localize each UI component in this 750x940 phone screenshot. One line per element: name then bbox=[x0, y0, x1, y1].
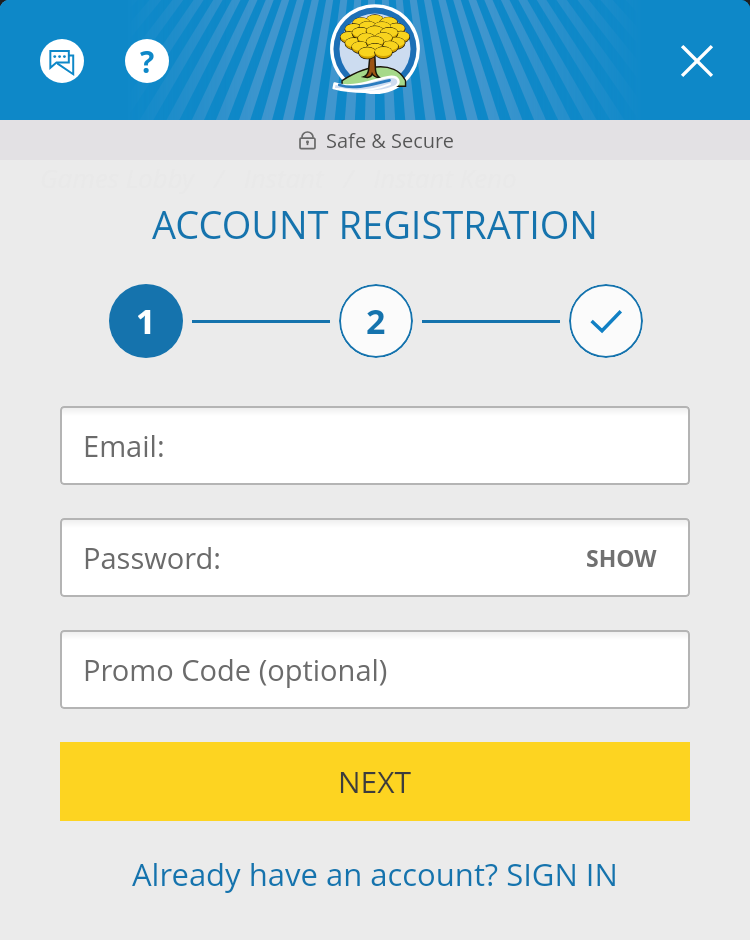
staticText: ? bbox=[140, 41, 155, 82]
staticText: Password: bbox=[83, 538, 222, 577]
staticText: 1 bbox=[136, 298, 156, 344]
button[interactable] bbox=[569, 284, 643, 358]
button[interactable]: Promo Code (optional) bbox=[60, 630, 690, 709]
button[interactable]: 1 bbox=[109, 284, 183, 358]
button[interactable]: Already have an account? SIGN IN bbox=[0, 853, 750, 895]
button[interactable]: 2 bbox=[339, 284, 413, 358]
button[interactable]: NEXT bbox=[60, 742, 690, 821]
staticText: Email: bbox=[83, 426, 165, 465]
staticText: NEXT bbox=[338, 761, 412, 802]
staticText: Safe & Secure bbox=[326, 127, 455, 154]
staticText: SHOW bbox=[586, 542, 657, 573]
staticText: 2 bbox=[366, 298, 386, 344]
button[interactable]: Password: bbox=[60, 518, 690, 597]
staticText: Promo Code (optional) bbox=[83, 650, 388, 689]
button[interactable]: Close bbox=[669, 33, 725, 89]
button[interactable]: Email: bbox=[60, 406, 690, 485]
button[interactable]: Chat bbox=[40, 39, 84, 83]
button[interactable]: Help bbox=[125, 39, 169, 83]
staticText: Already have an account? SIGN IN bbox=[132, 853, 618, 895]
staticText: ACCOUNT REGISTRATION bbox=[0, 198, 750, 250]
